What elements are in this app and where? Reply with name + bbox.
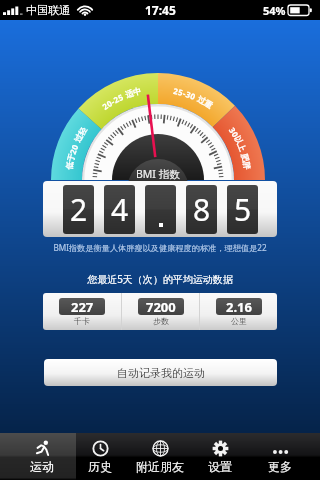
staticText: 历史 xyxy=(88,459,112,474)
staticText: 8 xyxy=(193,189,211,230)
staticText: 您最近5天（次）的平均运动数据 xyxy=(0,272,320,286)
staticText: 227 xyxy=(71,298,94,315)
button[interactable]: 附近朋友 xyxy=(124,433,196,480)
staticText: 5 xyxy=(234,189,252,230)
staticText: BMI指数是衡量人体胖瘦以及健康程度的标准，理想值是22 xyxy=(0,242,320,253)
button[interactable]: 7200 xyxy=(122,293,199,330)
staticText: 自动记录我的运动 xyxy=(117,366,205,380)
button[interactable]: 历史 xyxy=(76,433,124,480)
staticText: 4 xyxy=(111,189,129,230)
staticText: 2.16 xyxy=(226,298,252,315)
staticText: 千卡 xyxy=(74,316,90,326)
staticText: 更多 xyxy=(268,459,292,474)
staticText: 设置 xyxy=(208,459,232,474)
other: 设置 xyxy=(212,440,229,457)
staticText: 公里 xyxy=(231,316,247,326)
button[interactable]: 更多 xyxy=(244,433,320,480)
staticText: 2 xyxy=(70,189,88,230)
staticText: 7200 xyxy=(146,298,176,315)
staticText: 步数 xyxy=(153,316,169,326)
staticText: 54% xyxy=(263,3,286,18)
other: 更多 xyxy=(272,440,289,457)
button[interactable]: 运动 xyxy=(0,433,76,480)
button[interactable]: 自动记录我的运动 xyxy=(44,359,277,386)
button[interactable]: 227 xyxy=(43,293,121,330)
staticText: 17:45 xyxy=(145,2,176,18)
staticText: 附近朋友 xyxy=(136,459,184,474)
other: 运动 xyxy=(34,440,51,457)
button[interactable]: 设置 xyxy=(196,433,244,480)
button[interactable]: 2.16 xyxy=(200,293,277,330)
staticText: 中国联通 xyxy=(26,3,70,17)
staticText: 运动 xyxy=(30,459,54,474)
other: 附近朋友 xyxy=(152,440,169,457)
other: 历史 xyxy=(92,440,109,457)
